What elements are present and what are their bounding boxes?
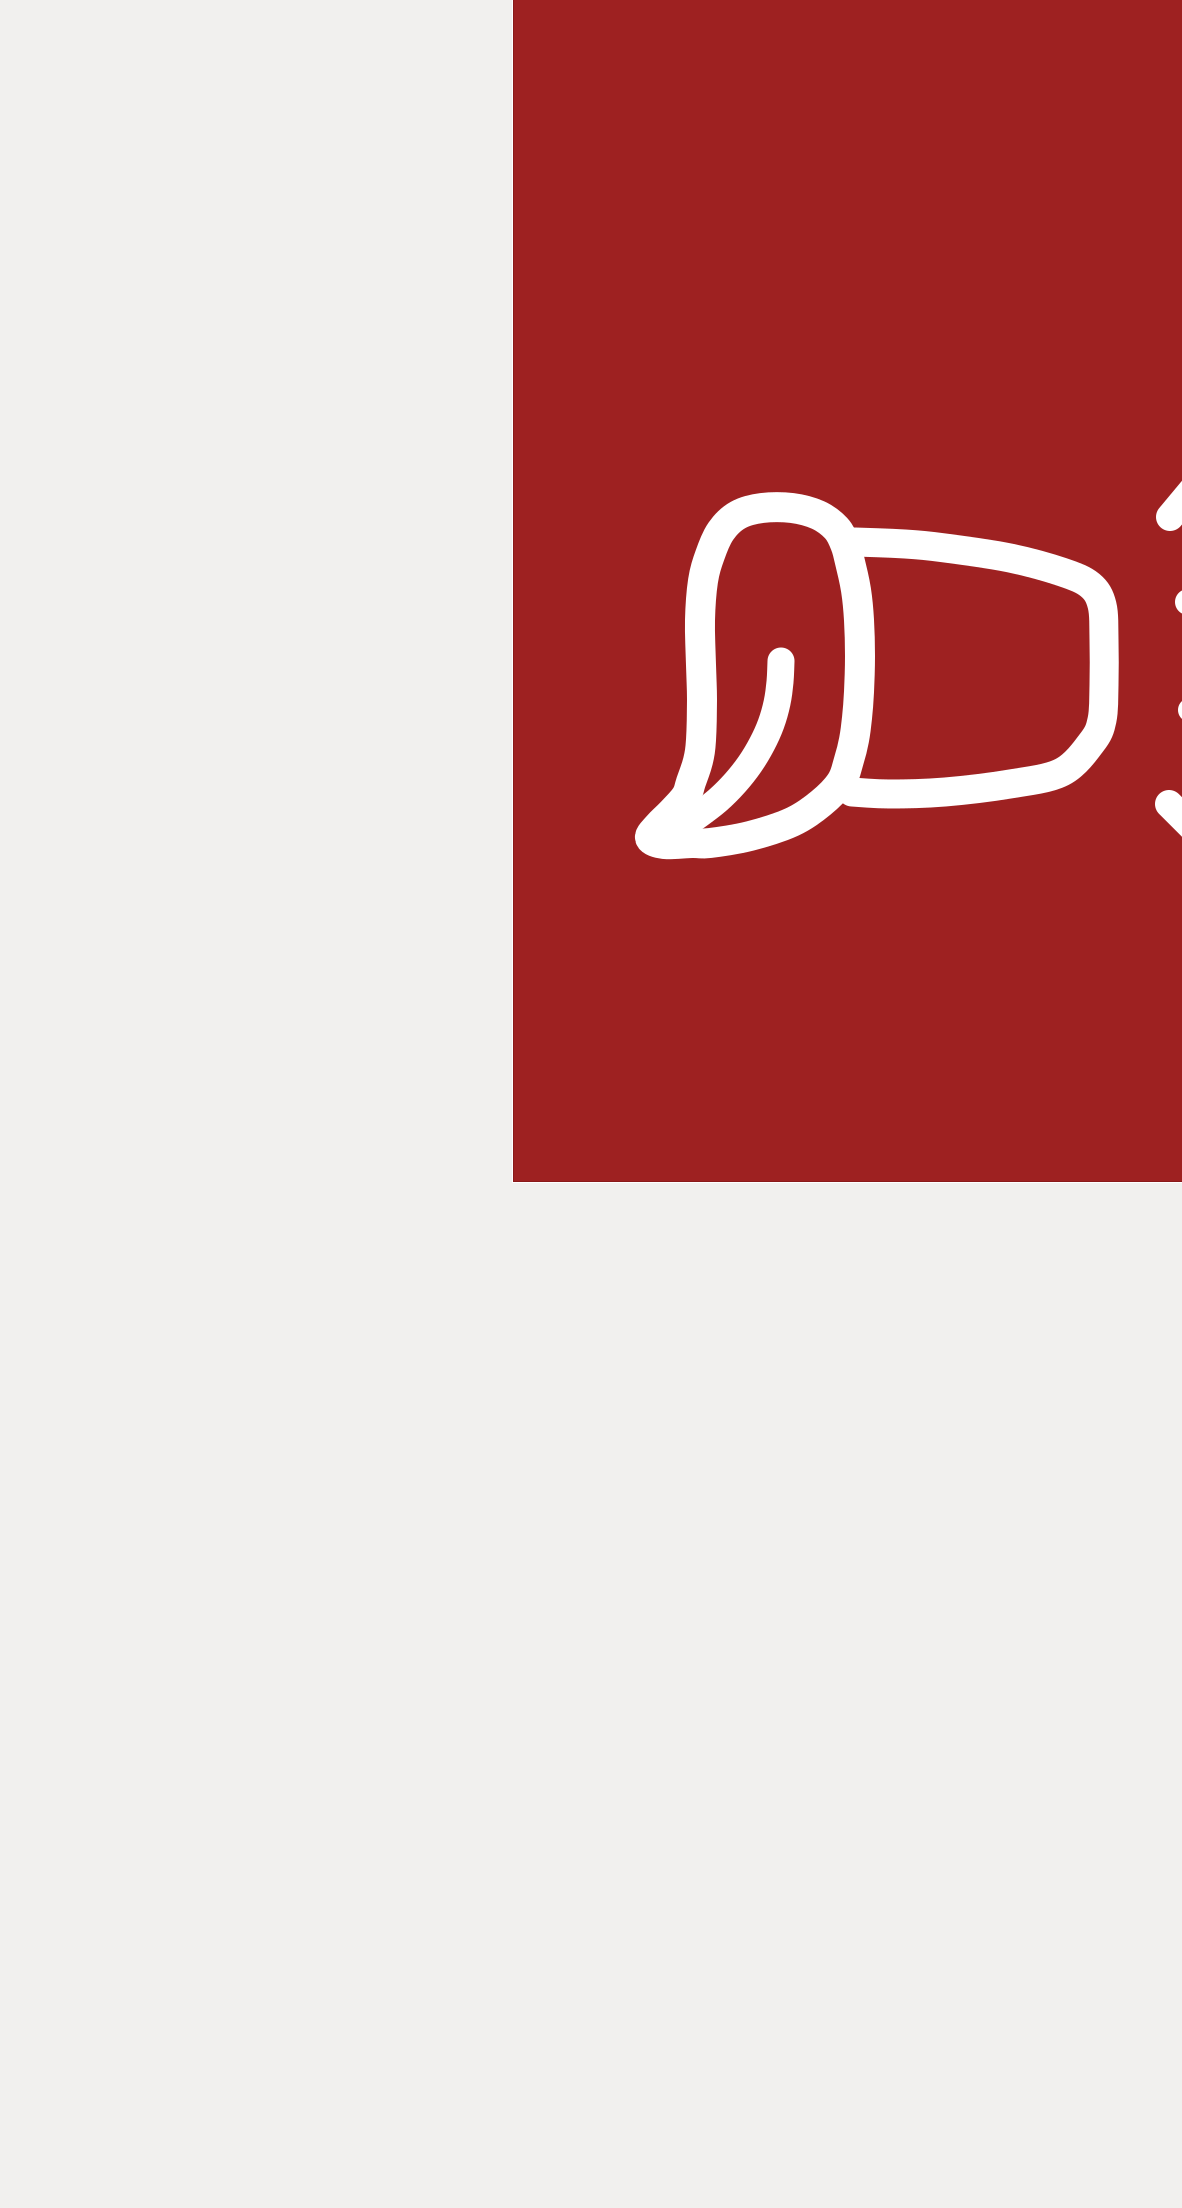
button[interactable]: Open (0, 0, 1182, 2208)
